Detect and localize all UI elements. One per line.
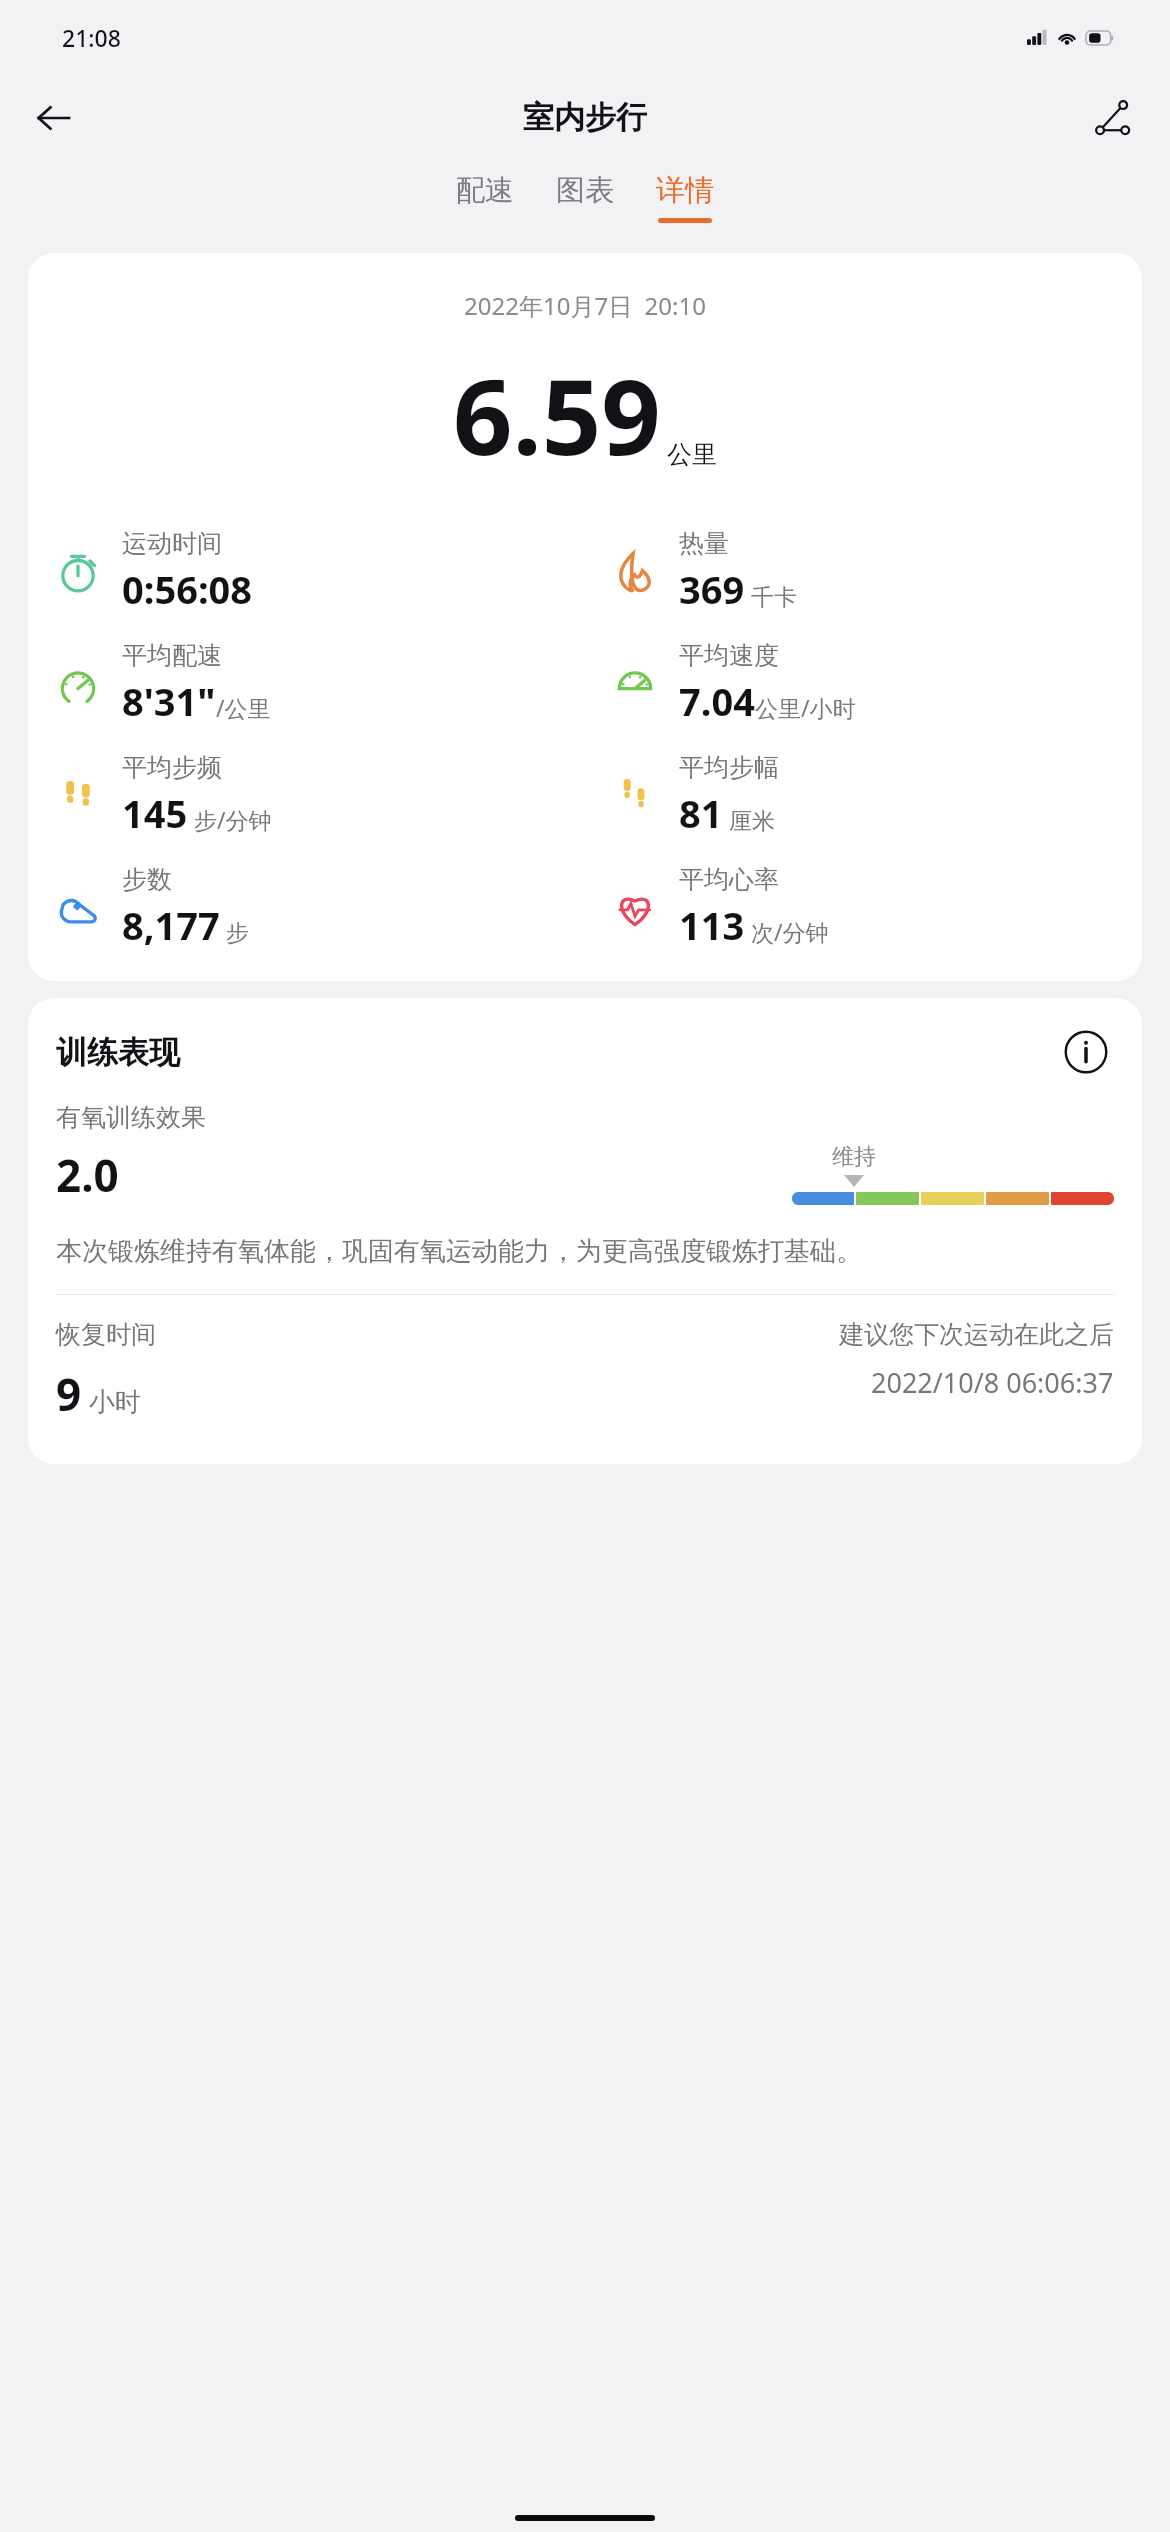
staticText: 配速	[456, 172, 514, 209]
staticText: 步	[220, 916, 249, 947]
button[interactable]: 平均心率	[585, 864, 1142, 951]
staticText: 步数	[122, 864, 172, 895]
staticText: 有氧训练效果	[56, 1102, 206, 1133]
staticText: 21:08	[62, 22, 121, 53]
staticText: 训练表现	[56, 1033, 1058, 1072]
staticText: 维持	[832, 1143, 876, 1171]
staticText: 6.59	[453, 344, 661, 486]
staticText: 2022/10/8 06:06:37	[871, 1364, 1114, 1401]
staticText: 本次锻炼维持有氧体能，巩固有氧运动能力，为更高强度锻炼打基础。	[56, 1235, 1114, 1268]
staticText: 小时	[82, 1383, 141, 1419]
staticText: 7.04	[679, 675, 755, 727]
button[interactable]: 平均速度	[585, 640, 1142, 727]
button[interactable]: 平均配速	[28, 640, 585, 727]
staticText: 9	[56, 1364, 82, 1424]
staticText: /公里	[216, 692, 271, 723]
button[interactable]: 平均步幅	[585, 752, 1142, 839]
staticText: 图表	[556, 172, 614, 209]
staticText: 详情	[656, 172, 714, 209]
button[interactable]: Back	[22, 87, 84, 149]
button[interactable]: 图表	[544, 166, 626, 229]
staticText: 平均步频	[122, 752, 222, 783]
staticText: 113	[679, 899, 745, 951]
button[interactable]: 平均步频	[28, 752, 585, 839]
button[interactable]: Info	[1058, 1024, 1114, 1080]
button[interactable]: 热量	[585, 528, 1142, 615]
staticText: 公里	[667, 439, 717, 470]
button[interactable]: 步数	[28, 864, 585, 951]
staticText: 2.0	[56, 1145, 119, 1205]
button[interactable]: 详情	[644, 166, 726, 229]
staticText: 步/分钟	[188, 804, 272, 835]
staticText: 运动时间	[122, 528, 222, 559]
staticText: 建议您下次运动在此之后	[839, 1319, 1114, 1350]
staticText: 恢复时间	[56, 1319, 156, 1350]
staticText: 369	[679, 563, 745, 615]
staticText: 平均心率	[679, 864, 779, 895]
staticText: 热量	[679, 528, 729, 559]
button[interactable]: 配速	[444, 166, 526, 229]
staticText: 公里/小时	[755, 692, 856, 723]
staticText: 145	[122, 787, 188, 839]
staticText: 千卡	[745, 580, 797, 611]
staticText: 8,177	[122, 899, 220, 951]
staticText: 平均步幅	[679, 752, 779, 783]
staticText: 次/分钟	[745, 916, 829, 947]
staticText: 厘米	[723, 804, 775, 835]
staticText: 81	[679, 787, 723, 839]
button[interactable]: Share	[1082, 87, 1144, 149]
staticText: 8'31"	[122, 675, 216, 727]
button[interactable]: 运动时间	[28, 528, 585, 615]
staticText: 0:56:08	[122, 563, 253, 615]
staticText: 平均速度	[679, 640, 779, 671]
staticText: 室内步行	[523, 98, 647, 137]
staticText: 2022年10月7日 20:10	[28, 289, 1142, 322]
staticText: 平均配速	[122, 640, 222, 671]
